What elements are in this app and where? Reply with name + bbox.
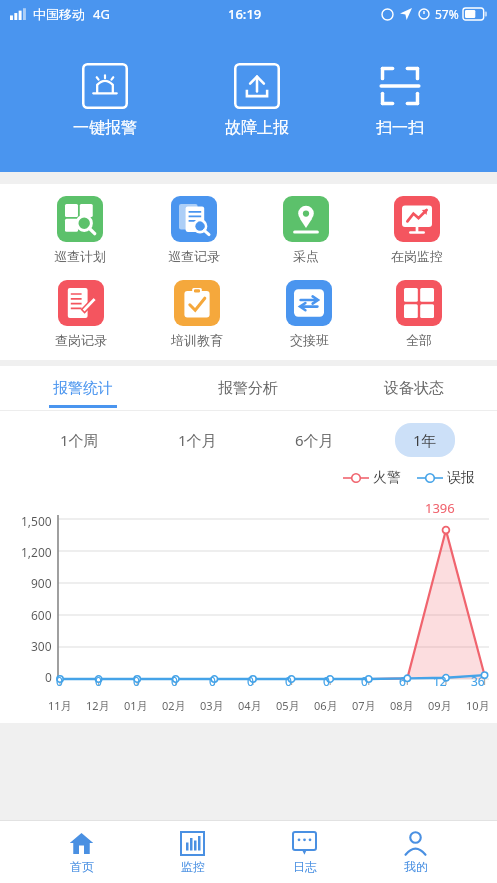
- staticText: 57%: [435, 6, 459, 22]
- staticText: 01月: [124, 698, 148, 713]
- staticText: 0: [133, 673, 140, 689]
- staticText: 1个周: [60, 430, 99, 450]
- button[interactable]: 报警分析: [165, 366, 331, 410]
- staticText: 监控: [181, 859, 205, 874]
- staticText: 0: [361, 673, 368, 689]
- staticText: 设备状态: [384, 379, 444, 398]
- staticText: 全部: [406, 332, 432, 348]
- staticText: 0: [247, 673, 254, 689]
- button[interactable]: 交接班: [278, 278, 340, 350]
- staticText: 08月: [390, 698, 414, 713]
- staticText: 采点: [293, 248, 319, 264]
- staticText: 02月: [162, 698, 186, 713]
- staticText: 中国移动: [33, 6, 85, 22]
- staticText: 0: [45, 669, 52, 685]
- staticText: 06月: [314, 698, 338, 713]
- staticText: 交接班: [290, 332, 329, 348]
- button[interactable]: 我的: [385, 827, 446, 878]
- staticText: 16:19: [228, 5, 262, 23]
- staticText: 0: [95, 673, 102, 689]
- staticText: 6个月: [295, 430, 334, 450]
- staticText: 培训教育: [171, 332, 223, 348]
- staticText: 在岗监控: [391, 248, 443, 264]
- staticText: 1,200: [21, 544, 52, 560]
- staticText: 巡查记录: [168, 248, 220, 264]
- staticText: 10月: [466, 698, 490, 713]
- button[interactable]: 6个月: [277, 423, 352, 457]
- button[interactable]: 故障上报: [211, 59, 303, 142]
- staticText: 首页: [70, 859, 94, 874]
- staticText: 07月: [352, 698, 376, 713]
- button[interactable]: 1个周: [42, 423, 117, 457]
- staticText: 日志: [293, 859, 317, 874]
- staticText: 报警统计: [53, 379, 113, 398]
- staticText: 04月: [238, 698, 262, 713]
- staticText: 300: [31, 638, 52, 654]
- button[interactable]: 采点: [275, 194, 337, 266]
- staticText: 900: [31, 575, 52, 591]
- staticText: 600: [31, 607, 52, 623]
- staticText: 1个月: [178, 430, 217, 450]
- staticText: 我的: [404, 859, 428, 874]
- staticText: 1年: [413, 430, 437, 450]
- staticText: 一键报警: [73, 118, 137, 138]
- staticText: 扫一扫: [376, 118, 424, 138]
- button[interactable]: 巡查记录: [160, 194, 228, 266]
- staticText: 0: [323, 673, 330, 689]
- staticText: 6: [399, 673, 406, 689]
- staticText: 0: [209, 673, 216, 689]
- staticText: 0: [56, 673, 63, 689]
- button[interactable]: 报警统计: [0, 366, 165, 410]
- staticText: 火警: [373, 469, 401, 487]
- button[interactable]: 监控: [162, 827, 223, 878]
- staticText: 12月: [86, 698, 110, 713]
- button[interactable]: 查岗记录: [47, 278, 115, 350]
- staticText: 报警分析: [218, 379, 278, 398]
- button[interactable]: 首页: [51, 827, 112, 878]
- staticText: 0: [171, 673, 178, 689]
- button[interactable]: 巡查计划: [46, 194, 114, 266]
- button[interactable]: 日志: [274, 827, 335, 878]
- staticText: 故障上报: [225, 118, 289, 138]
- staticText: 0: [285, 673, 292, 689]
- staticText: 查岗记录: [55, 332, 107, 348]
- staticText: 12: [433, 673, 447, 689]
- button[interactable]: 全部: [388, 278, 450, 350]
- staticText: 03月: [200, 698, 224, 713]
- staticText: 1,500: [21, 513, 52, 529]
- button[interactable]: 扫一扫: [362, 59, 438, 142]
- staticText: 误报: [447, 469, 475, 487]
- button[interactable]: 设备状态: [331, 366, 497, 410]
- button[interactable]: 1年: [395, 423, 455, 457]
- staticText: 36: [471, 673, 485, 689]
- staticText: 11月: [48, 698, 72, 713]
- button[interactable]: 在岗监控: [383, 194, 451, 266]
- staticText: 4G: [93, 5, 110, 23]
- staticText: 1396: [425, 499, 455, 517]
- button[interactable]: 一键报警: [59, 59, 151, 142]
- staticText: 05月: [276, 698, 300, 713]
- staticText: 09月: [428, 698, 452, 713]
- button[interactable]: 培训教育: [163, 278, 231, 350]
- staticText: 巡查计划: [54, 248, 106, 264]
- button[interactable]: 1个月: [160, 423, 235, 457]
